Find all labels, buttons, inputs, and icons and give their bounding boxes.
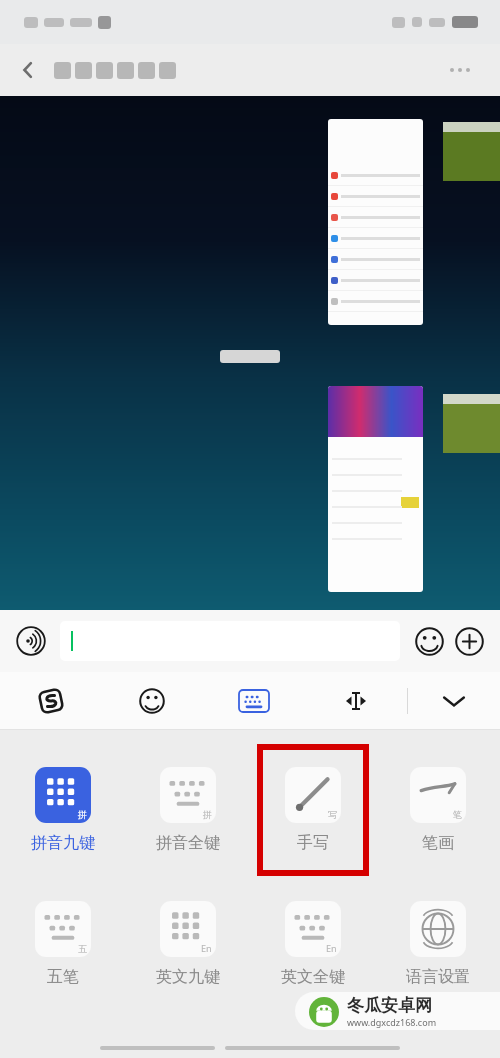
- button[interactable]: Back: [8, 50, 48, 90]
- staticText: 冬瓜安卓网: [347, 995, 432, 1016]
- button[interactable]: En: [125, 884, 250, 1004]
- button[interactable]: [60, 621, 400, 661]
- staticText: En: [326, 942, 337, 954]
- button[interactable]: 拼: [0, 744, 125, 876]
- button[interactable]: Emoticons: [101, 672, 203, 730]
- staticText: 英文九键: [156, 967, 220, 987]
- button[interactable]: Hide keyboard: [408, 672, 500, 730]
- button[interactable]: 语言设置: [375, 884, 500, 1004]
- button[interactable]: 五: [0, 884, 125, 1004]
- button[interactable]: [328, 119, 423, 325]
- staticText: 拼: [203, 809, 212, 820]
- button[interactable]: Emoji: [412, 624, 446, 658]
- staticText: www.dgxcdz168.com: [347, 1016, 437, 1028]
- staticText: En: [201, 942, 212, 954]
- staticText: 拼: [78, 809, 87, 820]
- button[interactable]: En: [250, 884, 375, 1004]
- button[interactable]: Sogou input method: [0, 672, 101, 730]
- staticText: 英文全键: [281, 967, 345, 987]
- staticText: 笔画: [422, 833, 454, 853]
- staticText: 写: [328, 809, 337, 820]
- staticText: 五: [78, 943, 87, 954]
- button[interactable]: 拼: [125, 744, 250, 876]
- button[interactable]: More: [444, 62, 476, 78]
- staticText: 笔: [453, 809, 462, 820]
- button[interactable]: [328, 386, 423, 592]
- staticText: 拼音九键: [31, 833, 95, 853]
- button[interactable]: Move cursor: [305, 672, 407, 730]
- button[interactable]: 笔: [375, 744, 500, 876]
- staticText: 拼音全键: [156, 833, 220, 853]
- staticText: 手写: [297, 833, 329, 853]
- staticText: 五笔: [47, 967, 79, 987]
- button[interactable]: Voice input: [14, 624, 48, 658]
- button[interactable]: 写: [257, 744, 369, 876]
- button[interactable]: Keyboard layout: [203, 672, 305, 730]
- staticText: 语言设置: [406, 967, 470, 987]
- button[interactable]: More actions: [452, 624, 486, 658]
